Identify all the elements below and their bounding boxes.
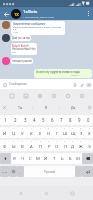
- button[interactable]: Home: [41, 188, 52, 199]
- button[interactable]: Ь: [58, 153, 66, 164]
- button[interactable]: Т: [50, 153, 58, 164]
- button[interactable]: Clipboard: [78, 92, 85, 99]
- button[interactable]: Б: [66, 153, 74, 164]
- button[interactable]: Э: [85, 140, 93, 151]
- staticText: ооо: [12, 51, 16, 54]
- staticText: Ж: [79, 144, 83, 150]
- button[interactable]: Я: [11, 153, 18, 164]
- staticText: 9: [72, 127, 74, 129]
- button[interactable]: 3: [18, 140, 27, 151]
- button[interactable]: More options: [84, 9, 93, 18]
- button[interactable]: 0: [77, 127, 85, 138]
- button[interactable]: С: [26, 153, 34, 164]
- button[interactable]: 2: [9, 140, 18, 151]
- button[interactable]: непадслушеей: [11, 58, 33, 64]
- button[interactable]: 8: [61, 140, 69, 151]
- staticText: Х: [88, 131, 91, 137]
- button[interactable]: Back: [15, 188, 26, 199]
- button[interactable]: 6: [45, 127, 53, 138]
- staticText: непадслушеей: [12, 59, 32, 63]
- button[interactable]: Translate: [50, 92, 57, 99]
- button[interactable]: Ты: [8, 101, 32, 114]
- button[interactable]: 7: [53, 127, 61, 138]
- button[interactable]: 3: [20, 115, 30, 125]
- button[interactable]: Х: [85, 127, 93, 138]
- button[interactable]: 6: [48, 115, 57, 125]
- button[interactable]: 8: [66, 115, 75, 125]
- button[interactable]: 5: [36, 140, 45, 151]
- staticText: К: [30, 131, 33, 137]
- button[interactable]: 5: [36, 127, 45, 138]
- staticText: Ц: [12, 131, 16, 137]
- button[interactable]: Emoji: [1, 81, 8, 88]
- button[interactable]: Да: [60, 101, 86, 114]
- button[interactable]: Дай ты чатер: [11, 35, 31, 41]
- staticText: 14:34: [13, 31, 19, 34]
- button[interactable]: #casinoty крутить нового года: [34, 69, 92, 78]
- button[interactable]: 2: [10, 115, 20, 125]
- button[interactable]: Send: [82, 166, 93, 177]
- button[interactable]: 0: [77, 140, 85, 151]
- staticText: ?123: [2, 170, 8, 173]
- button[interactable]: Закреплённое сообщение: [11, 21, 65, 35]
- button[interactable]: Symbols: [0, 166, 9, 177]
- staticText: Э: [88, 144, 91, 150]
- button[interactable]: 2: [9, 127, 18, 138]
- button[interactable]: Space: [24, 166, 75, 177]
- button[interactable]: 4: [27, 127, 36, 138]
- button[interactable]: 1: [0, 127, 9, 138]
- button[interactable]: Ю: [74, 153, 82, 164]
- button[interactable]: Backspace: [82, 153, 93, 164]
- button[interactable]: 9: [69, 127, 77, 138]
- button[interactable]: Recent apps: [67, 188, 78, 199]
- button[interactable]: 7: [57, 115, 66, 125]
- button[interactable]: 5: [39, 115, 48, 125]
- button[interactable]: Themes: [22, 92, 29, 99]
- button[interactable]: 3: [18, 127, 27, 138]
- staticText: А: [30, 144, 33, 150]
- button[interactable]: 1: [0, 140, 9, 151]
- button[interactable]: Stickers: [64, 92, 71, 99]
- staticText: 8: [64, 127, 66, 129]
- staticText: 7: [56, 127, 58, 129]
- button[interactable]: Avatar: [2, 21, 10, 29]
- staticText: Неломонтный Ник: [12, 47, 36, 51]
- button[interactable]: Emoji: [9, 166, 17, 177]
- button[interactable]: Close suggestions: [0, 101, 8, 114]
- button[interactable]: 9: [69, 140, 77, 151]
- button[interactable]: 4: [30, 115, 39, 125]
- button[interactable]: 9: [75, 115, 84, 125]
- staticText: 4: [33, 117, 36, 123]
- button[interactable]: Я: [33, 101, 59, 114]
- button[interactable]: 4: [27, 140, 36, 151]
- button[interactable]: Keyboard settings: [8, 92, 15, 99]
- button[interactable]: Attach file: [78, 81, 85, 88]
- button[interactable]: More suggestions: [86, 101, 93, 114]
- staticText: .: [78, 169, 79, 174]
- button[interactable]: 8: [61, 127, 69, 138]
- button[interactable]: Channel avatar: [11, 9, 21, 19]
- staticText: 3: [22, 140, 24, 142]
- button[interactable]: И: [42, 153, 50, 164]
- button[interactable]: GIF: [36, 92, 43, 99]
- button[interactable]: Voice message: [71, 81, 78, 88]
- staticText: Закреплённое сообщение: [13, 22, 46, 25]
- button[interactable]: Back: [1, 9, 11, 19]
- button[interactable]: 6: [45, 140, 53, 151]
- button[interactable]: 7: [53, 140, 61, 151]
- button[interactable]: Shift: [0, 153, 11, 164]
- staticText: Битва в игре: выиграйте с нами 1 000 000…: [13, 25, 63, 31]
- button[interactable]: М: [34, 153, 42, 164]
- staticText: 2: [13, 140, 15, 142]
- button[interactable]: 1: [0, 115, 10, 125]
- button[interactable]: Camera: [85, 81, 92, 88]
- button[interactable]: Period: [75, 166, 82, 177]
- button[interactable]: 0: [84, 115, 93, 125]
- button[interactable]: Comma: [17, 166, 24, 177]
- staticText: 9: [72, 140, 74, 142]
- button[interactable]: Ч: [18, 153, 26, 164]
- button[interactable]: Avatar: [2, 34, 10, 42]
- staticText: 0: [80, 140, 82, 142]
- button[interactable]: Avatar: [2, 57, 10, 65]
- button[interactable]: Bulych Bulych: [11, 43, 37, 55]
